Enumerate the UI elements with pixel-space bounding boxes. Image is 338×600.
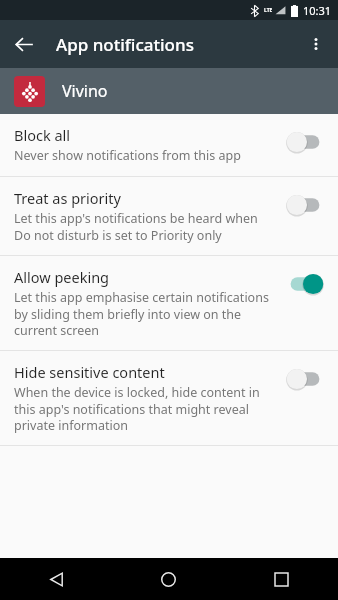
staticText: 10:31 [303, 3, 332, 18]
staticText: Block all [14, 125, 71, 145]
staticText: Allow peeking [14, 267, 110, 287]
button[interactable]: Block all [0, 114, 338, 176]
button[interactable]: Treat as priority off [282, 192, 328, 218]
staticText: Vivino [62, 80, 108, 102]
button[interactable]: Back [0, 558, 112, 600]
button[interactable]: Allow peeking on [282, 271, 328, 297]
staticText: Let this app's notifications be heard wh… [14, 210, 274, 243]
button[interactable]: Home [112, 558, 225, 600]
staticText: Hide sensitive content [14, 362, 165, 382]
staticText: When the device is locked, hide content … [14, 384, 274, 433]
staticText: Never show notifications from this app [14, 147, 241, 164]
button[interactable]: Allow peeking [0, 256, 338, 350]
button[interactable]: Recent apps [225, 558, 338, 600]
staticText: Let this app emphasise certain notificat… [14, 289, 274, 338]
button[interactable]: Block all off [282, 129, 328, 155]
button[interactable]: Treat as priority [0, 177, 338, 255]
button[interactable]: Hide sensitive content [0, 351, 338, 445]
button[interactable]: Vivino [0, 68, 338, 114]
button[interactable]: More options [298, 26, 334, 62]
staticText: App notifications [56, 33, 194, 56]
staticText: Treat as priority [14, 188, 121, 208]
staticText: LTE [264, 7, 273, 14]
button[interactable]: Hide sensitive content off [282, 366, 328, 392]
button[interactable]: Back [6, 26, 42, 62]
